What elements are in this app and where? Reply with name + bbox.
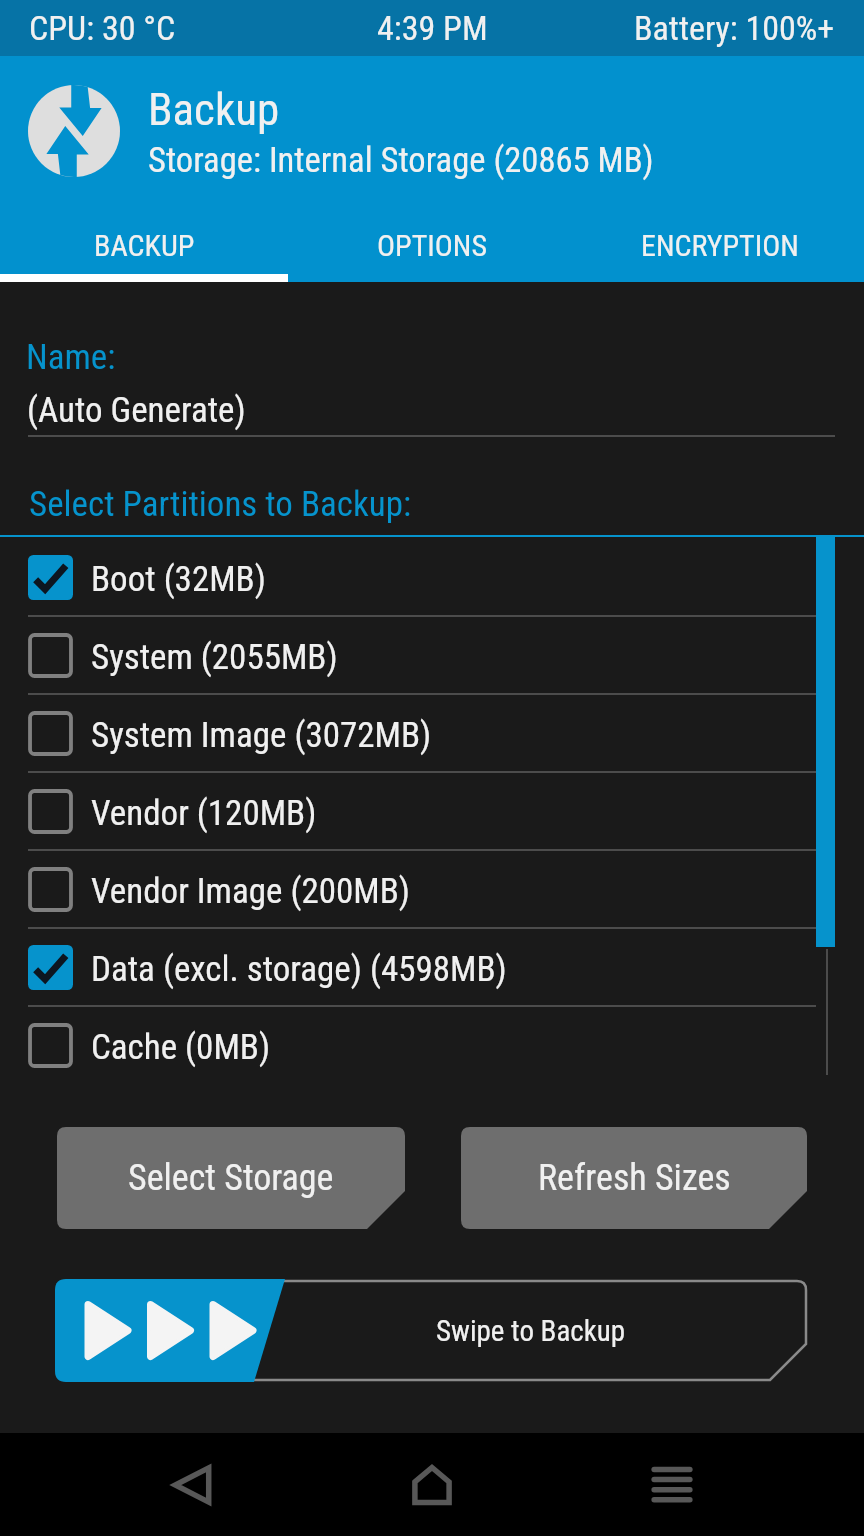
staticText: Storage: Internal Storage (20865 MB) <box>148 140 654 181</box>
staticText: Cache (0MB) <box>91 1027 271 1068</box>
staticText: Backup <box>148 83 280 136</box>
staticText: Refresh Sizes <box>538 1157 731 1199</box>
button[interactable]: Select Storage <box>57 1127 405 1229</box>
staticText: Name: <box>26 337 116 378</box>
button[interactable]: System Image (3072MB) <box>0 695 864 771</box>
button[interactable]: Swipe to Backup <box>57 1281 806 1380</box>
button[interactable]: (Auto Generate) <box>26 382 835 437</box>
button[interactable]: System (2055MB) <box>0 617 864 693</box>
staticText: ENCRYPTION <box>641 228 799 263</box>
button[interactable]: BACKUP <box>0 218 288 282</box>
staticText: Vendor Image (200MB) <box>91 871 410 912</box>
staticText: Select Partitions to Backup: <box>29 484 412 525</box>
button[interactable]: Home <box>372 1433 492 1536</box>
staticText: CPU: 30 °C <box>29 8 176 48</box>
staticText: Swipe to Backup <box>436 1314 626 1348</box>
staticText: 4:39 PM <box>377 8 488 48</box>
staticText: (Auto Generate) <box>27 390 246 431</box>
button[interactable]: Data (excl. storage) (4598MB) <box>0 929 864 1005</box>
button[interactable]: OPTIONS <box>288 218 576 282</box>
staticText: Battery: 100%+ <box>634 8 835 48</box>
staticText: Data (excl. storage) (4598MB) <box>91 949 507 990</box>
button[interactable]: Back <box>132 1433 252 1536</box>
staticText: BACKUP <box>94 228 195 263</box>
staticText: Boot (32MB) <box>91 559 266 600</box>
staticText: OPTIONS <box>377 228 487 263</box>
button[interactable]: Cache (0MB) <box>0 1007 864 1083</box>
button[interactable]: Menu <box>612 1433 732 1536</box>
button[interactable]: Vendor Image (200MB) <box>0 851 864 927</box>
staticText: Vendor (120MB) <box>91 793 317 834</box>
staticText: System (2055MB) <box>91 637 338 678</box>
button[interactable]: Refresh Sizes <box>461 1127 807 1229</box>
button[interactable]: ENCRYPTION <box>576 218 864 282</box>
staticText: System Image (3072MB) <box>91 715 432 756</box>
button[interactable]: Boot (32MB) <box>0 539 864 615</box>
staticText: Select Storage <box>128 1157 334 1199</box>
button[interactable]: Vendor (120MB) <box>0 773 864 849</box>
